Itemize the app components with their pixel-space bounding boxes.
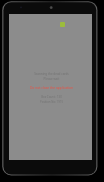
staticText: Box Count : 130 xyxy=(10,95,93,99)
button[interactable] xyxy=(9,14,92,160)
staticText: Scanning the dead cards xyxy=(10,72,93,76)
staticText: Do not close the application xyxy=(10,85,93,89)
staticText: Please wait xyxy=(10,77,93,81)
other: App logo xyxy=(60,22,65,27)
staticText: Position No: 1915 xyxy=(10,100,93,104)
